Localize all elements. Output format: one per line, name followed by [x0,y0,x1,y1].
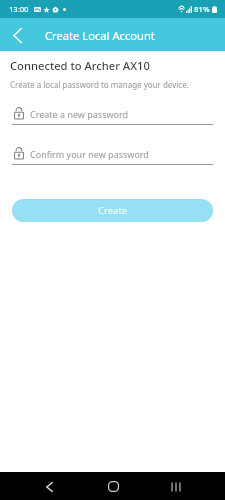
button[interactable]: Recent apps [162,473,190,500]
staticText: Create [98,204,128,217]
button[interactable]: Create a new password [0,107,225,125]
button[interactable]: Back [2,20,32,50]
staticText: 81% [194,4,210,15]
staticText: Create a local password to manage your d… [10,79,189,90]
button[interactable]: Confirm your new password [0,147,225,165]
staticText: Create a new password [30,108,129,120]
staticText: Confirm your new password [30,148,149,160]
staticText: Connected to Archer AX10 [10,58,150,73]
staticText: Create Local Account [45,28,155,43]
button[interactable]: Create [12,199,213,222]
staticText: 13:00 [9,4,29,14]
button[interactable]: Home [99,473,127,500]
button[interactable]: Back [35,473,63,500]
